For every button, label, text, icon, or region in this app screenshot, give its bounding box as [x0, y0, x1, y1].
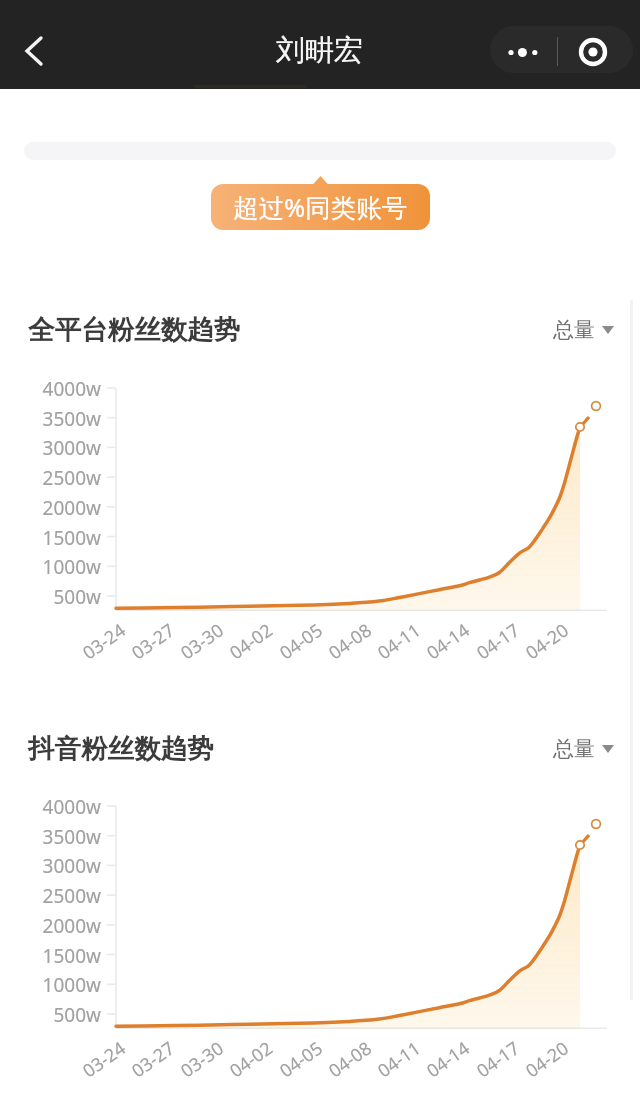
- button[interactable]: 总量: [553, 317, 614, 343]
- staticText: 1000w: [34, 554, 101, 580]
- staticText: 总量: [553, 736, 595, 762]
- staticText: 刘畊宏: [276, 32, 363, 69]
- staticText: 03-24: [71, 613, 137, 670]
- button[interactable]: Close mini program: [558, 26, 633, 73]
- staticText: 04-02: [218, 1031, 284, 1088]
- staticText: 04-17: [465, 613, 531, 670]
- staticText: 抖音粉丝数趋势: [28, 732, 214, 765]
- staticText: 03-30: [169, 613, 235, 670]
- staticText: 04-17: [465, 1031, 531, 1088]
- staticText: 4000w: [34, 794, 101, 820]
- staticText: 2000w: [34, 913, 101, 939]
- staticText: 1500w: [34, 525, 101, 551]
- staticText: 04-14: [415, 613, 481, 670]
- button[interactable]: 超过%同类账号: [211, 176, 430, 230]
- staticText: 04-11: [366, 1031, 432, 1088]
- button[interactable]: Back: [0, 26, 68, 78]
- staticText: 4000w: [34, 376, 101, 402]
- staticText: 03-27: [120, 1031, 186, 1088]
- staticText: 3000w: [34, 853, 101, 879]
- staticText: 04-05: [268, 1031, 334, 1088]
- staticText: 500w: [34, 1002, 101, 1028]
- staticText: 04-02: [218, 613, 284, 670]
- staticText: 04-20: [514, 613, 580, 670]
- staticText: 1000w: [34, 972, 101, 998]
- staticText: 总量: [553, 317, 595, 343]
- staticText: 2500w: [34, 465, 101, 491]
- staticText: 2500w: [34, 883, 101, 909]
- staticText: 04-11: [366, 613, 432, 670]
- staticText: 1500w: [34, 943, 101, 969]
- staticText: 3000w: [34, 435, 101, 461]
- staticText: 04-20: [514, 1031, 580, 1088]
- staticText: 3500w: [34, 406, 101, 432]
- staticText: 03-27: [120, 613, 186, 670]
- staticText: 2000w: [34, 495, 101, 521]
- staticText: 全平台粉丝数趋势: [28, 313, 240, 346]
- staticText: 04-08: [317, 613, 383, 670]
- staticText: 03-24: [71, 1031, 137, 1088]
- button[interactable]: More options: [490, 26, 557, 73]
- staticText: 04-05: [268, 613, 334, 670]
- button[interactable]: 总量: [553, 736, 614, 762]
- staticText: 3500w: [34, 824, 101, 850]
- staticText: 03-30: [169, 1031, 235, 1088]
- staticText: 500w: [34, 584, 101, 610]
- staticText: 04-14: [415, 1031, 481, 1088]
- staticText: 超过%同类账号: [233, 190, 408, 225]
- staticText: 04-08: [317, 1031, 383, 1088]
